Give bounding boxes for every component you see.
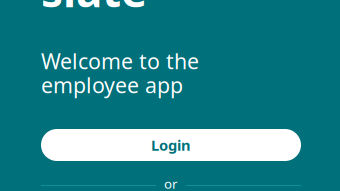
staticText: or [164, 175, 178, 191]
staticText: Login [151, 135, 191, 155]
staticText: slate [41, 0, 147, 19]
staticText: employee app [41, 71, 183, 99]
staticText: Welcome to the [41, 47, 199, 75]
button[interactable]: Login [41, 129, 301, 161]
